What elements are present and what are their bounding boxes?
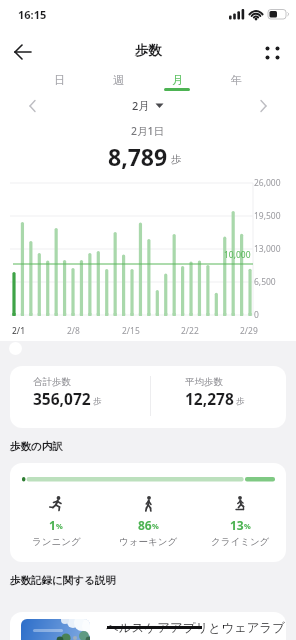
staticText: 2/29 <box>240 325 258 337</box>
staticText: 週 <box>113 73 124 87</box>
staticText: 年 <box>231 73 242 87</box>
staticText: 日 <box>54 73 65 87</box>
button[interactable]: 日 <box>30 70 89 90</box>
button[interactable]: ヘルスケアアプリとウェアラブ <box>10 612 286 640</box>
staticText: 356,072 <box>33 388 91 409</box>
staticText: % <box>244 521 251 531</box>
button[interactable] <box>257 99 269 113</box>
staticText: 歩数の内訳 <box>10 440 63 453</box>
staticText: 2/22 <box>181 325 199 337</box>
staticText: ウォーキング <box>119 536 178 548</box>
button[interactable] <box>260 40 286 66</box>
staticText: 歩数記録に関する説明 <box>10 574 116 587</box>
staticText: 合計歩数 <box>33 376 71 388</box>
staticText: 26,000 <box>254 177 281 189</box>
staticText: クライミング <box>211 536 270 548</box>
staticText: 10,000 <box>224 249 251 261</box>
staticText: 13,000 <box>254 243 281 255</box>
staticText: % <box>56 521 63 531</box>
button[interactable] <box>27 99 39 113</box>
staticText: 2/8 <box>67 325 80 337</box>
staticText: % <box>152 521 159 531</box>
staticText: 月 <box>172 73 183 87</box>
staticText: 0 <box>254 309 259 321</box>
staticText: 8,789 <box>108 141 168 172</box>
staticText: 2/1 <box>12 325 25 337</box>
staticText: 2月1日 <box>131 124 165 138</box>
staticText: 2/15 <box>122 325 140 337</box>
staticText: 歩 <box>236 396 245 407</box>
button[interactable] <box>8 38 36 66</box>
staticText: 6,500 <box>254 276 276 288</box>
button[interactable]: 2月 <box>132 98 164 113</box>
staticText: 12,278 <box>185 388 234 409</box>
staticText: ランニング <box>32 536 81 548</box>
staticText: 歩 <box>171 153 182 166</box>
staticText: 1 <box>49 517 56 533</box>
staticText: 歩 <box>93 396 102 407</box>
staticText: 86 <box>138 517 152 533</box>
staticText: ヘルスケアアプリとウェアラブ <box>106 620 286 636</box>
staticText: 歩数 <box>135 42 162 59</box>
button[interactable]: 年 <box>207 70 266 90</box>
staticText: 2月 <box>132 98 150 113</box>
staticText: 16:15 <box>18 7 47 22</box>
staticText: 13 <box>230 517 244 533</box>
button[interactable]: 月 <box>148 70 207 90</box>
staticText: 19,500 <box>254 210 281 222</box>
button[interactable]: 週 <box>89 70 148 90</box>
staticText: 平均歩数 <box>185 376 223 388</box>
